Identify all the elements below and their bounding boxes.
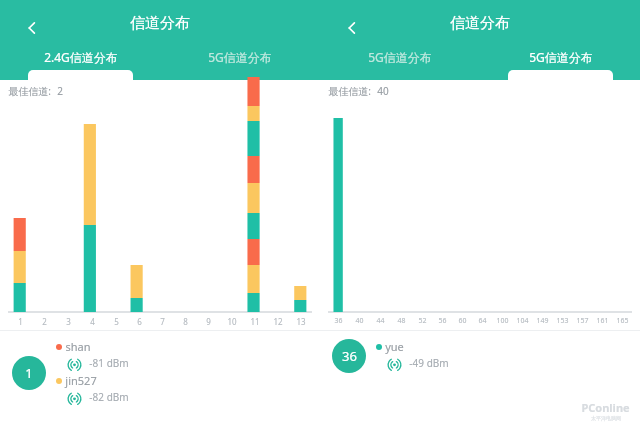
staticText: 64 [478, 316, 487, 326]
staticText: 4 [90, 316, 95, 327]
staticText: 36 [342, 347, 357, 365]
staticText: 161 [596, 316, 609, 326]
staticText: -81 dBm [89, 356, 129, 370]
staticText: 13 [296, 316, 306, 327]
staticText: 60 [458, 316, 467, 326]
staticText: 5G信道分布 [529, 49, 593, 65]
staticText: 149 [536, 316, 549, 326]
staticText: 最佳信道: [8, 84, 51, 98]
staticText: 5G信道分布 [208, 49, 272, 65]
staticText: 157 [576, 316, 589, 326]
staticText: -82 dBm [89, 390, 129, 404]
staticText: 100 [496, 316, 509, 326]
staticText: 8 [183, 316, 188, 327]
staticText: 36 [334, 316, 343, 326]
button[interactable]: Back [12, 8, 52, 48]
staticText: shan [65, 339, 91, 354]
staticText: 2.4G信道分布 [44, 49, 118, 65]
staticText: yue [385, 339, 404, 354]
staticText: 165 [616, 316, 629, 326]
staticText: 6 [137, 316, 142, 327]
staticText: 7 [160, 316, 165, 327]
staticText: 56 [438, 316, 447, 326]
button[interactable]: 5G信道分布 [320, 46, 480, 80]
staticText: 最佳信道: [328, 84, 371, 98]
staticText: 信道分布 [450, 14, 510, 33]
button[interactable]: 5G信道分布 [480, 46, 640, 80]
staticText: 104 [516, 316, 529, 326]
button[interactable]: 5G信道分布 [160, 46, 320, 80]
button[interactable]: 2.4G信道分布 [0, 46, 160, 80]
staticText: 9 [206, 316, 211, 327]
button[interactable]: 1 [0, 339, 320, 407]
staticText: -49 dBm [409, 356, 449, 370]
staticText: 信道分布 [130, 14, 190, 33]
staticText: 48 [397, 316, 406, 326]
staticText: 5 [114, 316, 119, 327]
staticText: 2 [42, 316, 47, 327]
staticText: 太平洋电脑网 [591, 415, 621, 421]
staticText: 1 [18, 316, 23, 327]
staticText: 12 [273, 316, 283, 327]
button[interactable]: 36 [320, 339, 640, 373]
staticText: 1 [25, 364, 33, 382]
staticText: 11 [250, 316, 260, 327]
staticText: 40 [355, 316, 364, 326]
staticText: jin527 [65, 373, 97, 388]
staticText: 52 [418, 316, 427, 326]
staticText: 10 [227, 316, 237, 327]
staticText: 40 [377, 84, 389, 98]
staticText: 2 [57, 84, 63, 98]
button[interactable]: Back [332, 8, 372, 48]
staticText: 5G信道分布 [368, 49, 432, 65]
staticText: 44 [376, 316, 385, 326]
staticText: 153 [556, 316, 569, 326]
staticText: 3 [66, 316, 71, 327]
staticText: PConline [581, 400, 630, 415]
